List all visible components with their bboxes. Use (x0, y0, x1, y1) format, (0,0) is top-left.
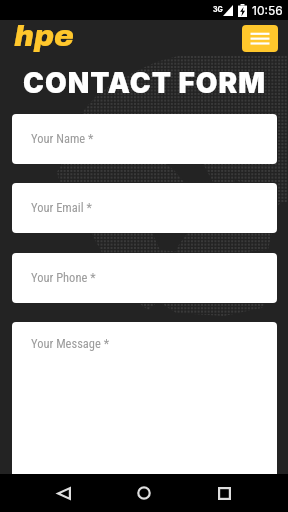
staticText: Your Email * (31, 200, 92, 215)
staticText: Your Phone * (31, 270, 96, 285)
staticText: 3G (213, 5, 223, 13)
button[interactable]: Open navigation menu (242, 25, 278, 52)
button[interactable]: Your Name * (12, 114, 277, 164)
button[interactable]: Back (40, 474, 88, 512)
button[interactable]: Your Email * (12, 183, 277, 233)
staticText: Your Message * (31, 336, 110, 351)
button[interactable]: Home (120, 474, 168, 512)
button[interactable]: hpe (14, 20, 75, 53)
button[interactable]: Your Phone * (12, 253, 277, 303)
staticText: Your Name * (31, 131, 94, 146)
button[interactable]: Your Message * (12, 322, 277, 474)
staticText: hpe (14, 20, 75, 53)
button[interactable]: Recent apps (200, 474, 248, 512)
staticText: 10:56 (252, 3, 283, 18)
staticText: CONTACT FORM (23, 66, 266, 100)
